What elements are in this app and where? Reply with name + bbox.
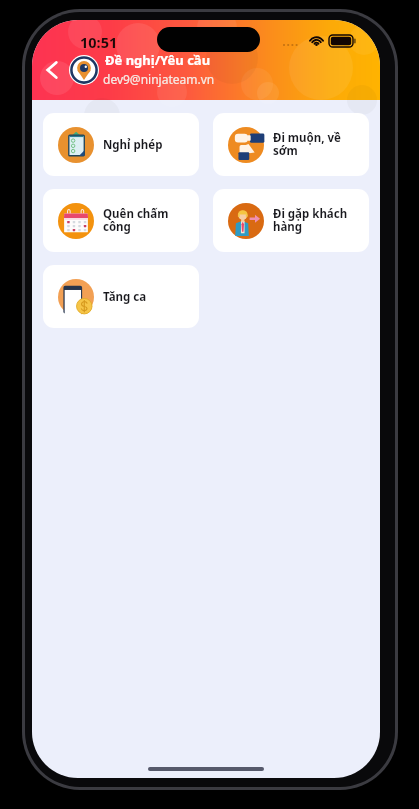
button[interactable]: Nghỉ phép [43, 113, 199, 176]
staticText: Nghỉ phép [103, 137, 163, 153]
button[interactable]: Quên chấm công [43, 189, 199, 252]
button[interactable]: Đi gặp khách hàng [213, 189, 369, 252]
staticText: Quên chấm công [103, 206, 194, 235]
staticText: Đề nghị/Yêu cầu [105, 51, 211, 69]
staticText: 10:51 [80, 32, 118, 52]
staticText: Tăng ca [103, 289, 147, 305]
button[interactable]: Đi muộn, về sớm [213, 113, 369, 176]
staticText: dev9@ninjateam.vn [103, 71, 215, 87]
button[interactable]: Back [35, 53, 69, 87]
staticText: Đi muộn, về sớm [273, 130, 364, 159]
button[interactable]: Tăng ca [43, 265, 199, 328]
staticText: Đi gặp khách hàng [273, 206, 364, 235]
